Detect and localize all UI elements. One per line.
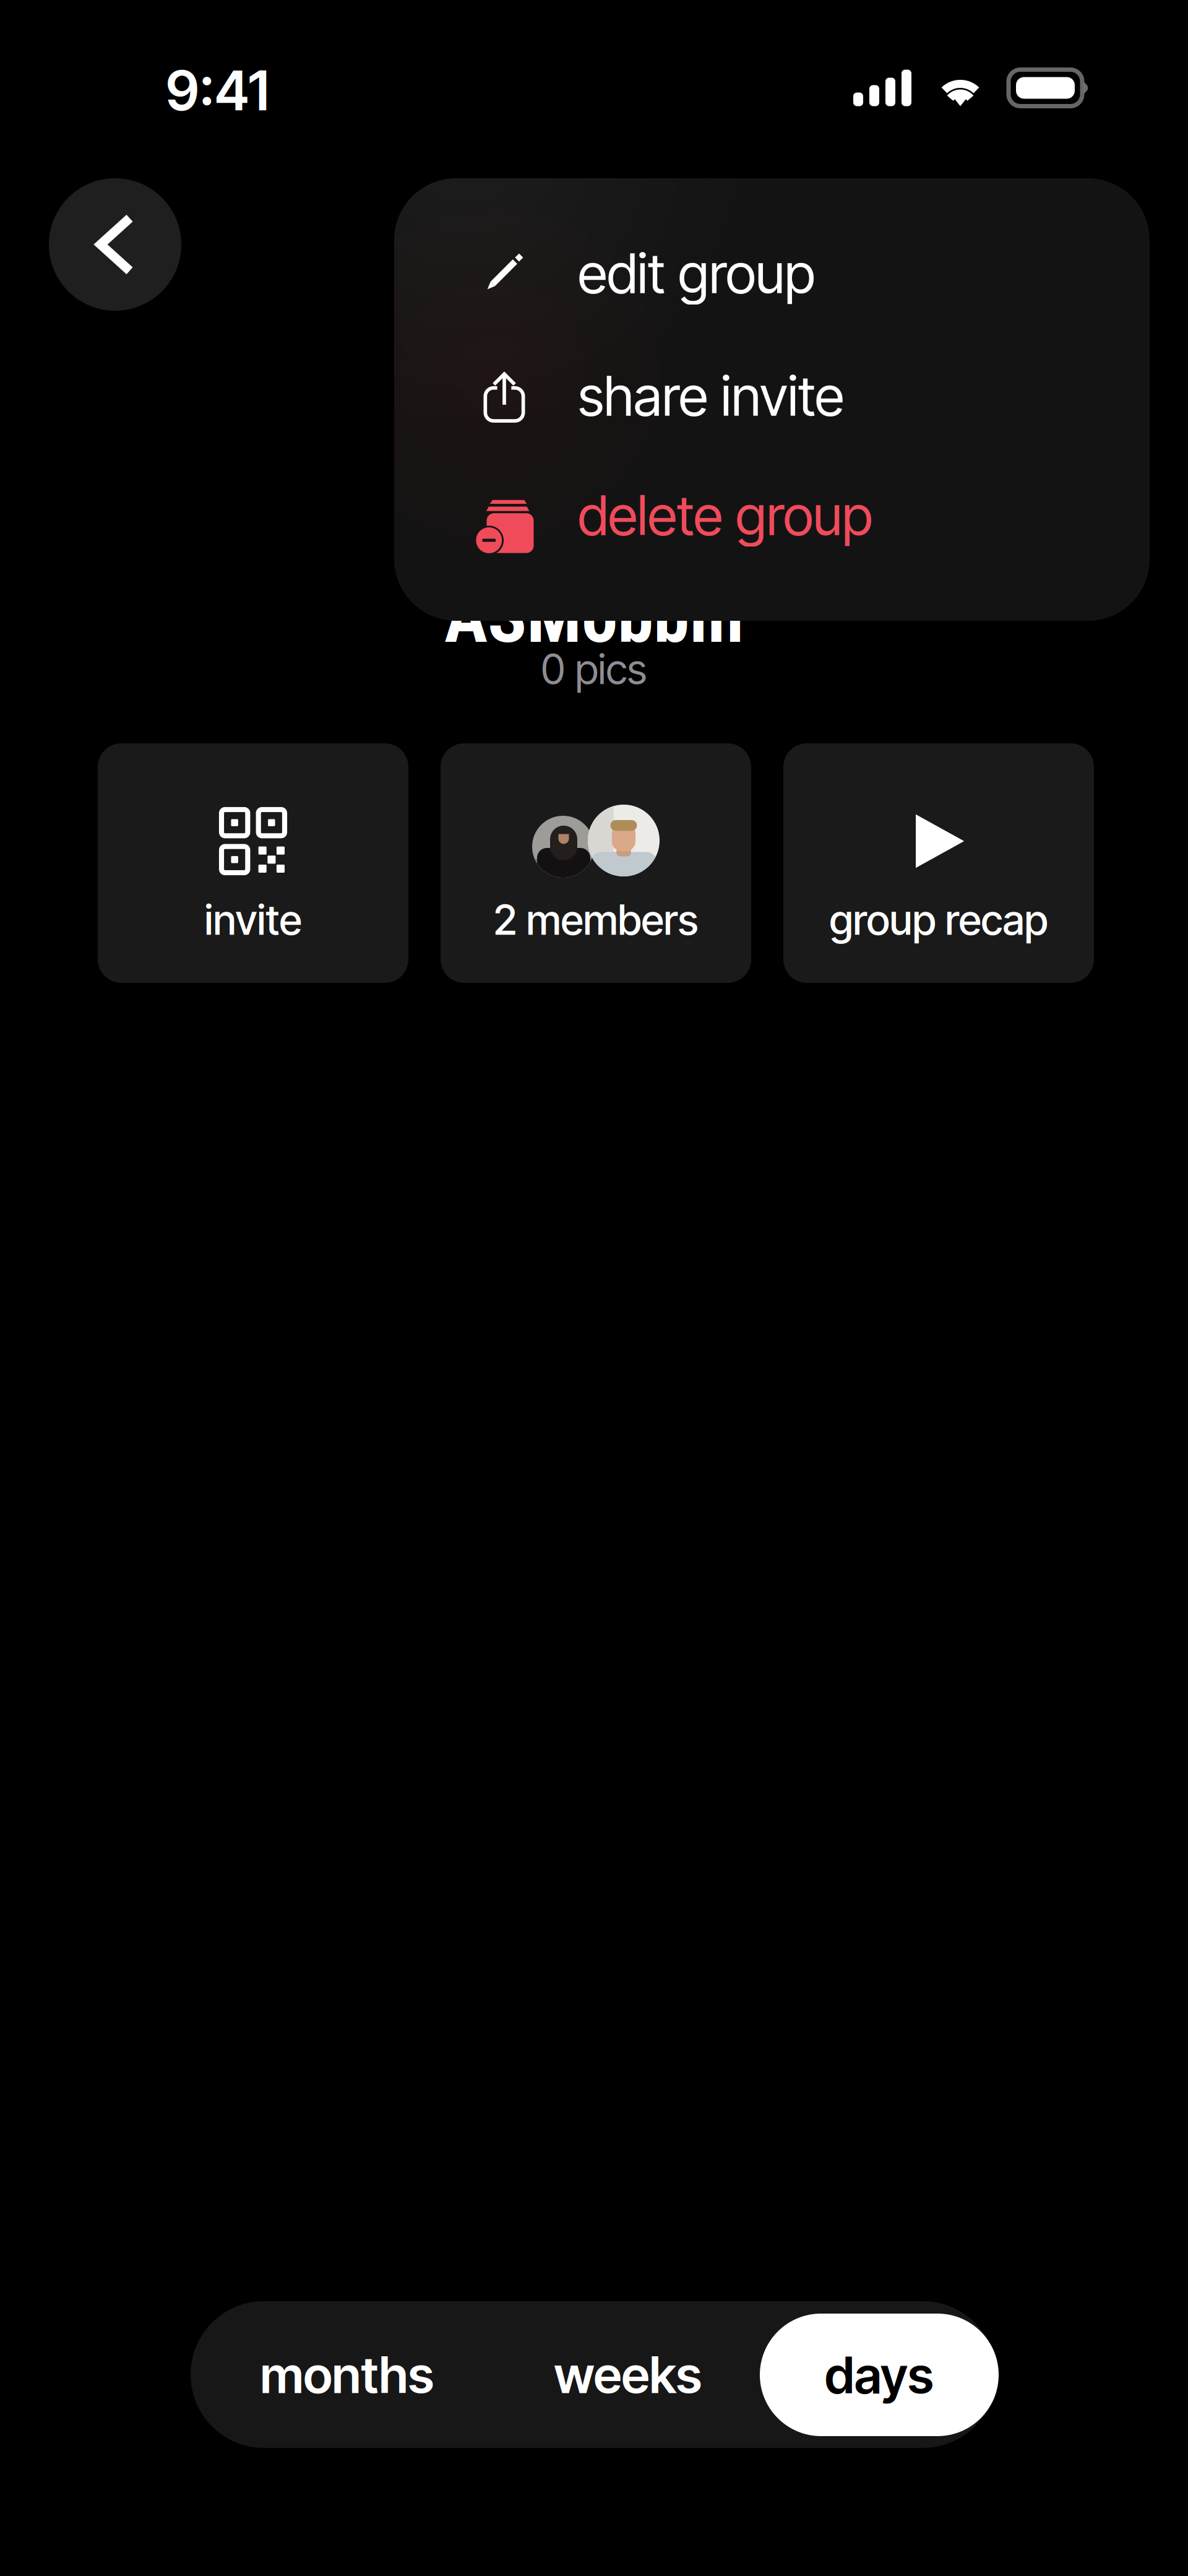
staticText: group recap: [829, 895, 1048, 945]
staticText: days: [825, 2344, 934, 2405]
staticText: 0 pics: [541, 644, 647, 694]
staticText: delete group: [578, 482, 872, 548]
staticText: invite: [204, 895, 302, 945]
button[interactable]: Back: [49, 178, 181, 311]
staticText: weeks: [554, 2344, 702, 2405]
staticText: edit group: [578, 240, 815, 306]
button[interactable]: share invite: [394, 383, 1150, 508]
button[interactable]: days: [760, 2314, 999, 2436]
button[interactable]: delete group: [394, 505, 1150, 630]
button[interactable]: months: [207, 2301, 487, 2448]
staticText: 9:41: [166, 58, 269, 123]
button[interactable]: weeks: [508, 2301, 748, 2448]
staticText: ASMobbin: [444, 575, 744, 660]
staticText: 2 members: [493, 895, 698, 945]
button[interactable]: invite: [98, 743, 408, 983]
button[interactable]: 2 members: [441, 743, 751, 983]
button[interactable]: edit group: [394, 258, 1150, 383]
button[interactable]: group recap: [783, 743, 1094, 983]
staticText: months: [260, 2344, 434, 2405]
staticText: share invite: [578, 363, 844, 429]
